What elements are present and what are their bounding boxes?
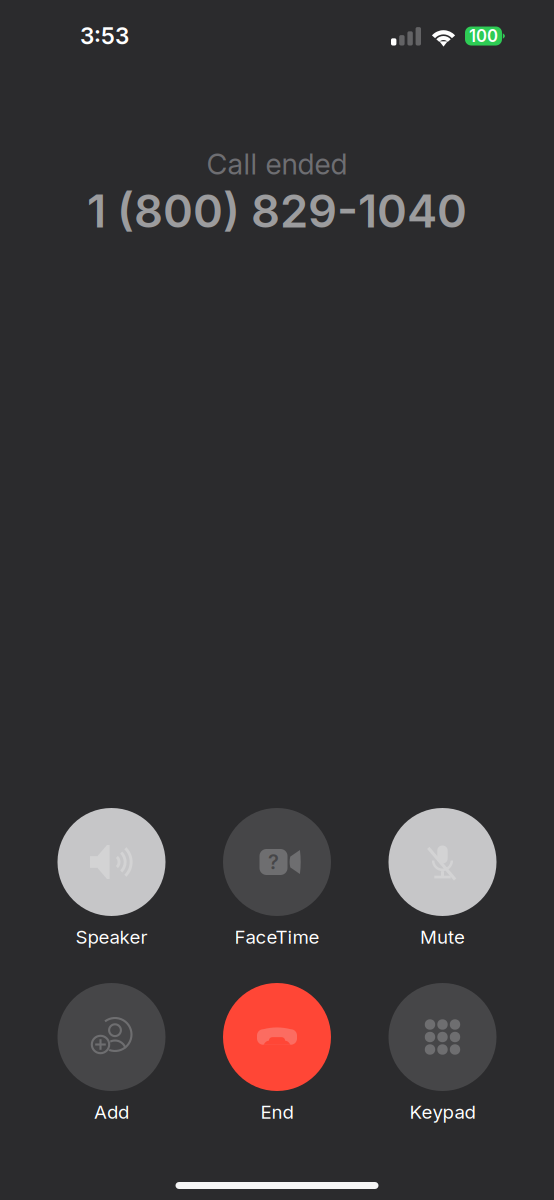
button[interactable]: FaceTime xyxy=(223,808,331,947)
button[interactable]: End call xyxy=(223,983,331,1122)
button[interactable]: Keypad xyxy=(388,983,496,1122)
button[interactable]: Add xyxy=(57,983,165,1122)
staticText: FaceTime xyxy=(234,926,319,948)
staticText: Mute xyxy=(420,926,465,948)
button[interactable]: Speaker xyxy=(57,808,165,947)
staticText: Call ended xyxy=(206,147,347,181)
staticText: 100 xyxy=(469,26,498,46)
staticText: End xyxy=(260,1101,293,1123)
button[interactable]: Mute xyxy=(388,808,496,947)
staticText: ? xyxy=(268,850,279,874)
staticText: 1 (800) 829-1040 xyxy=(87,184,467,238)
staticText: Add xyxy=(94,1101,129,1123)
staticText: Keypad xyxy=(409,1101,475,1123)
staticText: 3:53 xyxy=(80,22,129,50)
staticText: Speaker xyxy=(75,926,147,948)
